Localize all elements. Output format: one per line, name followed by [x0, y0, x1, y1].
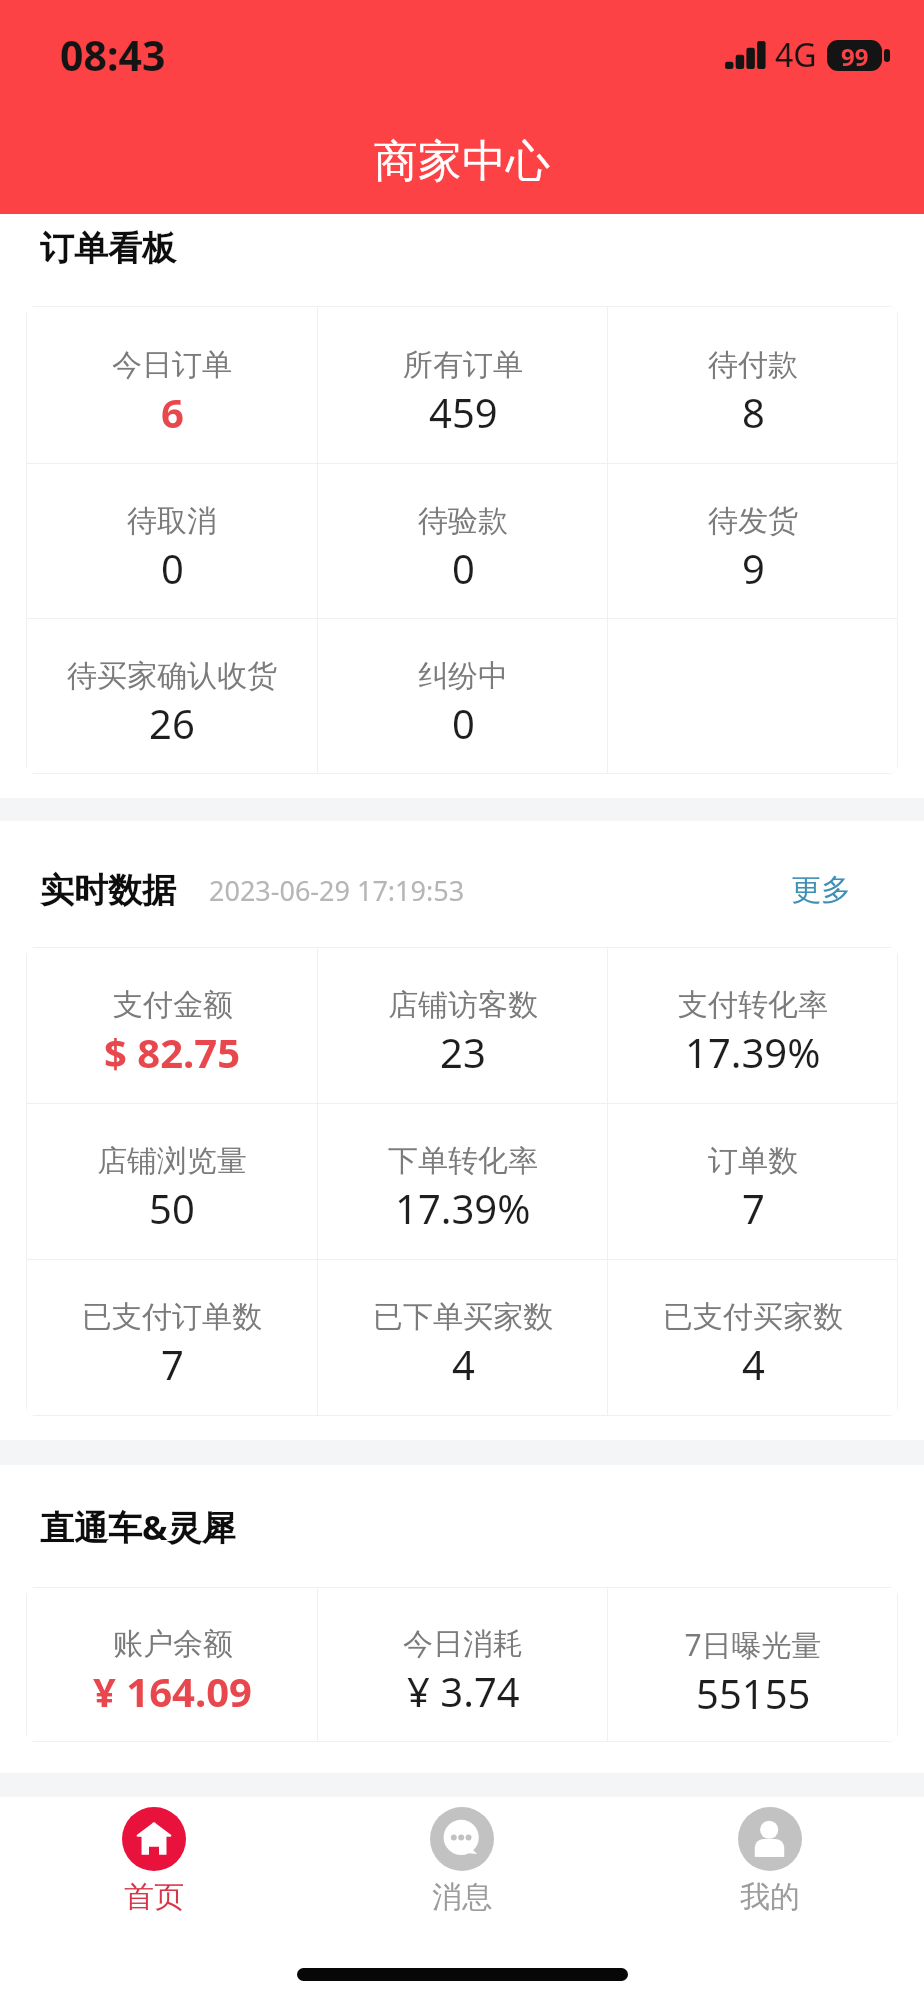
button[interactable]: 首页 [0, 1807, 308, 1921]
staticText: 实时数据 [40, 869, 176, 912]
staticText: 26 [149, 696, 195, 750]
staticText: 待验款 [418, 502, 508, 540]
staticText: 23 [440, 1025, 486, 1079]
staticText: 所有订单 [403, 346, 523, 384]
button[interactable]: 店铺浏览量 [27, 1104, 317, 1259]
staticText: 更多 [791, 871, 851, 909]
staticText: 4 [452, 1337, 475, 1391]
staticText: 直通车&灵犀 [40, 1504, 236, 1550]
staticText: 待付款 [708, 346, 798, 384]
staticText: 2023-06-29 17:19:53 [209, 872, 465, 909]
staticText: 6 [161, 385, 184, 439]
staticText: 0 [452, 696, 475, 750]
staticText: 首页 [124, 1878, 184, 1916]
staticText: 459 [429, 385, 498, 439]
staticText: 7日曝光量 [684, 1624, 822, 1665]
button[interactable]: 待验款 [318, 464, 607, 618]
button[interactable]: 待发货 [608, 464, 897, 618]
button[interactable]: 消息 [308, 1807, 616, 1921]
staticText: 待发货 [708, 502, 798, 540]
other: 我的 [738, 1807, 802, 1871]
staticText: 50 [149, 1181, 195, 1235]
staticText: 订单看板 [40, 227, 176, 270]
staticText: 55155 [696, 1666, 811, 1720]
staticText: 17.39% [685, 1025, 821, 1079]
staticText: 待买家确认收货 [67, 657, 277, 695]
staticText: 今日订单 [112, 346, 232, 384]
staticText: 支付转化率 [678, 986, 828, 1024]
button[interactable]: 已支付买家数 [608, 1260, 897, 1415]
staticText: 99 [841, 40, 869, 71]
button[interactable]: 待买家确认收货 [27, 619, 317, 773]
staticText: 0 [452, 541, 475, 595]
staticText: 9 [742, 541, 765, 595]
button[interactable]: 今日订单 [27, 307, 317, 463]
staticText: 08:43 [60, 27, 166, 83]
staticText: 17.39% [395, 1181, 531, 1235]
button[interactable]: 待取消 [27, 464, 317, 618]
button[interactable]: 纠纷中 [318, 619, 607, 773]
staticText: 4 [742, 1337, 765, 1391]
staticText: 订单数 [708, 1142, 798, 1180]
staticText: 待取消 [127, 502, 217, 540]
staticText: 店铺浏览量 [97, 1142, 247, 1180]
button[interactable]: 我的 [616, 1807, 924, 1921]
button[interactable]: 店铺访客数 [318, 948, 607, 1103]
button[interactable]: 已支付订单数 [27, 1260, 317, 1415]
button[interactable]: 支付金额 [27, 948, 317, 1103]
staticText: 0 [161, 541, 184, 595]
button[interactable]: 已下单买家数 [318, 1260, 607, 1415]
staticText: 今日消耗 [403, 1625, 523, 1663]
other: 首页 [122, 1807, 186, 1871]
button[interactable]: 今日消耗 [318, 1588, 607, 1741]
staticText: 店铺访客数 [388, 986, 538, 1024]
button[interactable]: 支付转化率 [608, 948, 897, 1103]
staticText: 已下单买家数 [373, 1298, 553, 1336]
staticText: ¥ 164.09 [93, 1664, 252, 1718]
staticText: 支付金额 [113, 986, 233, 1024]
staticText: 下单转化率 [388, 1142, 538, 1180]
staticText: 我的 [740, 1878, 800, 1916]
staticText: 已支付买家数 [663, 1298, 843, 1336]
staticText: ¥ 3.74 [407, 1664, 520, 1718]
staticText: 7 [742, 1181, 765, 1235]
other: 消息 [430, 1807, 494, 1871]
staticText: 消息 [432, 1878, 492, 1916]
staticText: 4G [775, 33, 817, 77]
staticText: 已支付订单数 [82, 1298, 262, 1336]
button[interactable]: 账户余额 [27, 1588, 317, 1741]
staticText: 账户余额 [113, 1625, 233, 1663]
staticText: 商家中心 [374, 134, 550, 189]
button[interactable]: 下单转化率 [318, 1104, 607, 1259]
staticText: 纠纷中 [418, 657, 508, 695]
button[interactable]: 所有订单 [318, 307, 607, 463]
button[interactable]: 订单数 [608, 1104, 897, 1259]
button[interactable]: 待付款 [608, 307, 897, 463]
staticText: 8 [742, 385, 765, 439]
button[interactable]: 7日曝光量 [608, 1588, 897, 1741]
button[interactable]: 更多 [775, 861, 884, 919]
staticText: 7 [161, 1337, 184, 1391]
staticText: $ 82.75 [104, 1025, 241, 1079]
